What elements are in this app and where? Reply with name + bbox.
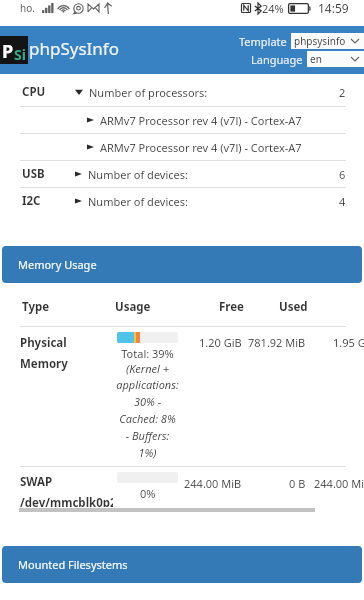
staticText: Total: 39% bbox=[121, 346, 174, 361]
staticText: 0 B bbox=[289, 476, 306, 491]
button[interactable]: USB bbox=[0, 161, 364, 187]
staticText: Used bbox=[279, 299, 308, 315]
button[interactable]: I2C bbox=[0, 188, 364, 214]
staticText: phpSysInfo bbox=[29, 37, 119, 60]
staticText: Number of processors: bbox=[89, 85, 208, 100]
other: Gmail bbox=[88, 4, 99, 12]
staticText: 1.20 GiB bbox=[199, 335, 242, 350]
staticText: ARMv7 Processor rev 4 (v7l) - Cortex-A7 bbox=[100, 140, 302, 155]
staticText: P bbox=[2, 39, 14, 64]
staticText: Number of devices: bbox=[88, 194, 188, 209]
staticText: Type bbox=[22, 299, 50, 315]
staticText: 4 bbox=[339, 194, 346, 209]
staticText: /dev/mmcblk0p2 bbox=[20, 495, 113, 507]
staticText: ARMv7 Processor rev 4 (v7l) - Cortex-A7 bbox=[100, 113, 302, 128]
button[interactable]: Memory Usage bbox=[2, 246, 362, 283]
other: NFC bbox=[241, 3, 251, 13]
button[interactable]: Physical bbox=[0, 327, 364, 466]
other: Bluetooth bbox=[254, 3, 262, 14]
button[interactable]: ARMv7 Processor rev 4 (v7l) - Cortex-A7 bbox=[0, 107, 364, 133]
other: Mobile signal bbox=[42, 3, 54, 13]
staticText: CPU bbox=[22, 84, 46, 100]
button[interactable]: CPU bbox=[0, 78, 364, 106]
button[interactable]: ARMv7 Processor rev 4 (v7l) - Cortex-A7 bbox=[0, 134, 364, 160]
staticText: 0% bbox=[140, 486, 156, 501]
staticText: ho. bbox=[20, 1, 35, 15]
button[interactable]: SWAP bbox=[0, 467, 364, 507]
staticText: Number of devices: bbox=[88, 167, 188, 182]
button[interactable]: phpsysinfo bbox=[291, 33, 364, 49]
staticText: 14:59 bbox=[318, 0, 349, 16]
staticText: phpsysinfo bbox=[294, 34, 346, 48]
other: Upload bbox=[104, 3, 112, 14]
staticText: Free bbox=[219, 299, 244, 315]
staticText: USB bbox=[22, 166, 45, 182]
staticText: SWAP bbox=[20, 474, 53, 490]
staticText: Memory bbox=[20, 356, 68, 372]
staticText: Usage bbox=[115, 299, 151, 315]
other: WhatsApp bbox=[73, 3, 84, 14]
staticText: Memory Usage bbox=[18, 257, 97, 272]
staticText: Physical bbox=[20, 335, 67, 351]
other: Battery 24 percent bbox=[288, 3, 311, 14]
staticText: 244.00 MiB bbox=[184, 476, 242, 491]
staticText: Template bbox=[239, 34, 287, 49]
staticText: 244.00 MiB bbox=[314, 476, 364, 491]
staticText: 6 bbox=[339, 167, 346, 182]
staticText: I2C bbox=[22, 193, 41, 209]
staticText: (Kernel + applications: 30% - Cached: 8%… bbox=[116, 361, 179, 460]
staticText: en bbox=[310, 52, 322, 66]
staticText: 1.95 GiB bbox=[333, 335, 364, 350]
other: Wi-Fi bbox=[57, 3, 70, 13]
staticText: Mounted Filesystems bbox=[18, 557, 128, 572]
staticText: Si bbox=[14, 45, 26, 64]
button[interactable]: en bbox=[307, 51, 364, 67]
button[interactable]: Mounted Filesystems bbox=[2, 546, 362, 583]
staticText: 781.92 MiB bbox=[248, 335, 306, 350]
staticText: Language bbox=[251, 52, 303, 67]
staticText: 24% bbox=[262, 1, 284, 16]
staticText: 2 bbox=[339, 85, 346, 100]
